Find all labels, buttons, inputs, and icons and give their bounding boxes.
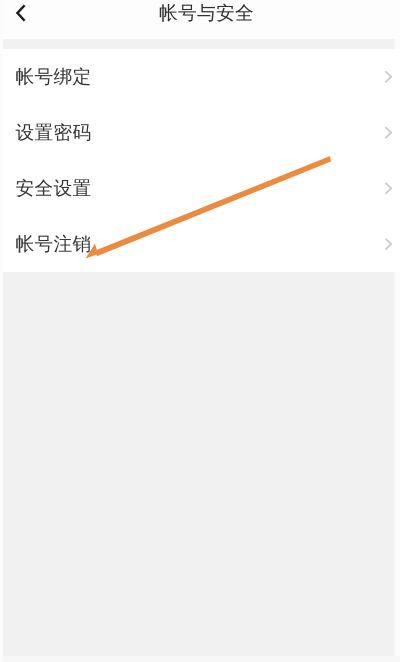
button[interactable]: Back (3, 0, 39, 26)
button[interactable]: 设置密码 (3, 105, 400, 161)
staticText: 安全设置 (15, 177, 91, 200)
staticText: 帐号注销 (15, 233, 91, 256)
button[interactable]: 帐号注销 (3, 216, 400, 272)
button[interactable]: 安全设置 (3, 160, 400, 216)
staticText: 设置密码 (15, 121, 91, 144)
staticText: 帐号绑定 (15, 65, 91, 88)
button[interactable]: 帐号绑定 (3, 49, 400, 105)
staticText: 帐号与安全 (159, 1, 254, 24)
